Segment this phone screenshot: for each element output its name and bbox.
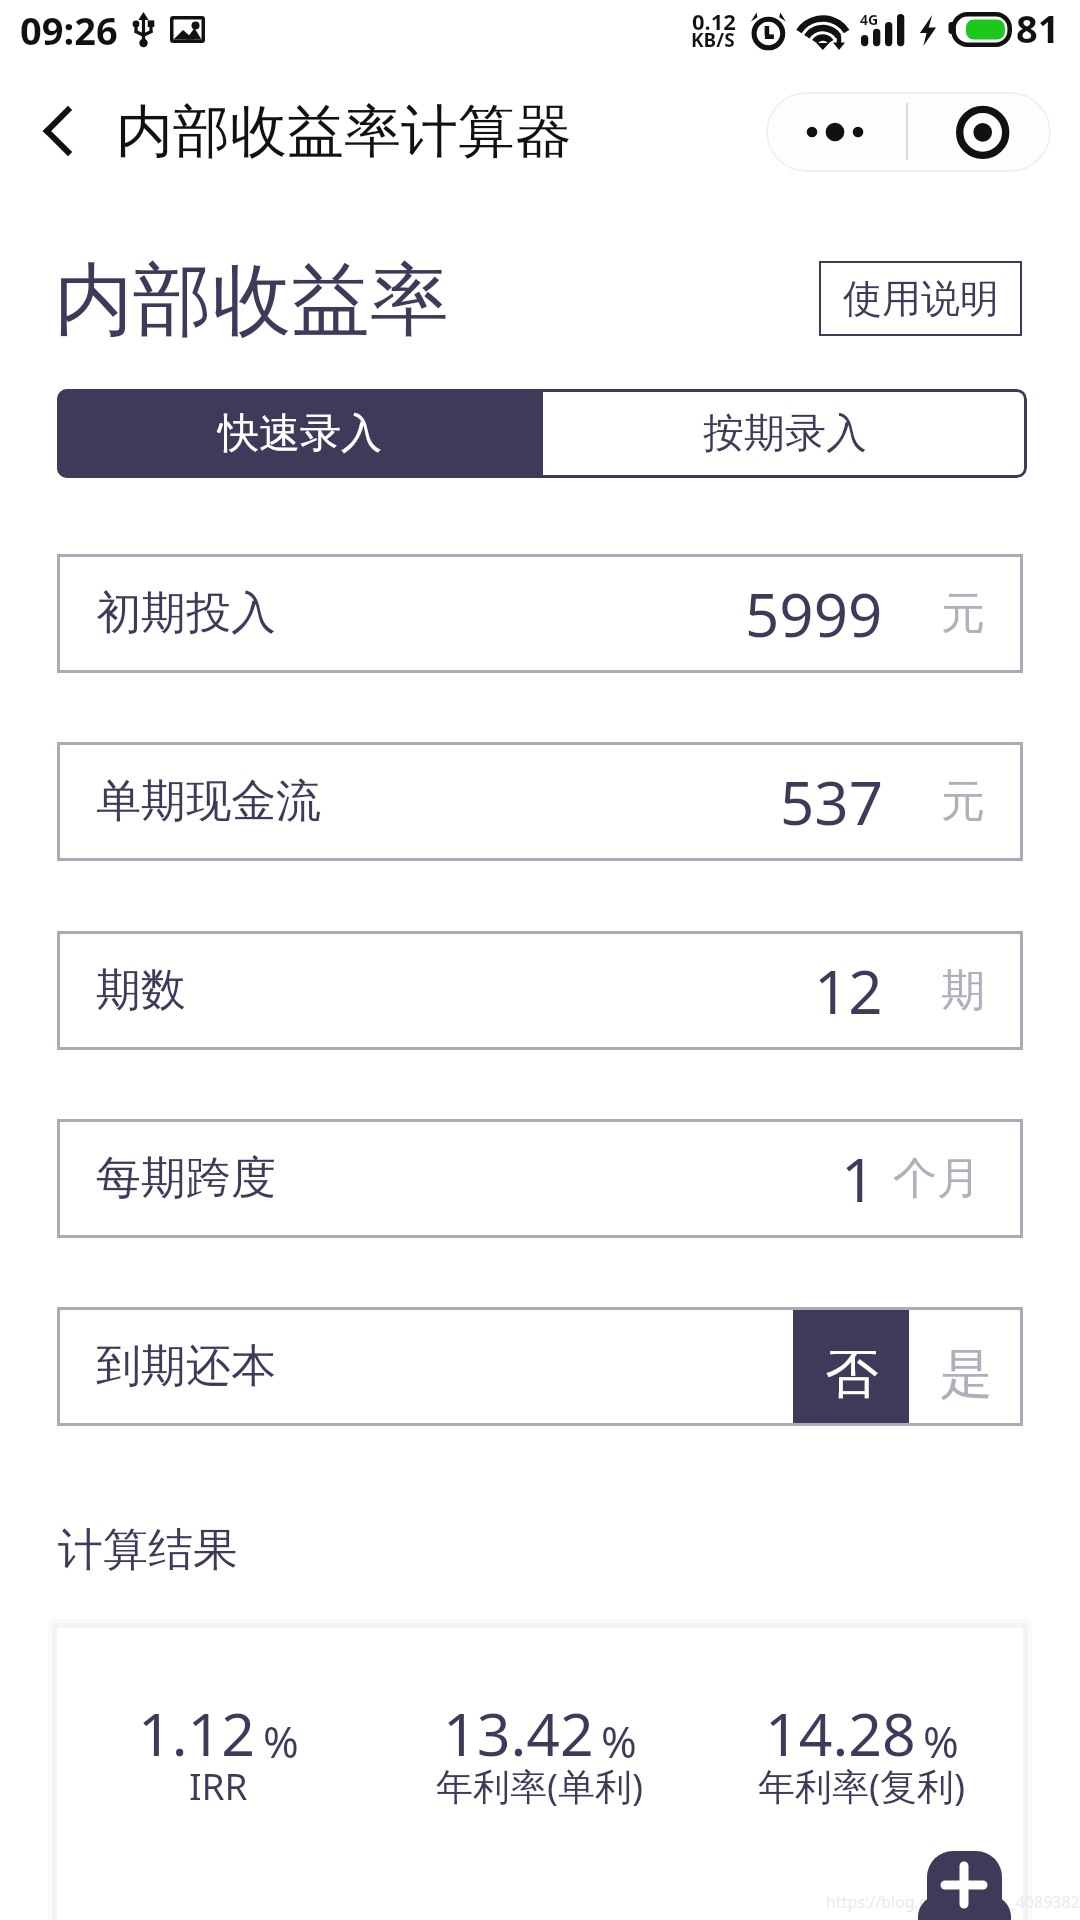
staticText: 0.12 bbox=[692, 6, 736, 36]
staticText: % bbox=[263, 1712, 299, 1771]
staticText: 计算结果 bbox=[58, 1522, 238, 1579]
staticText: 每期跨度 bbox=[96, 1150, 276, 1207]
staticText: 年利率(单利) bbox=[436, 1760, 644, 1811]
staticText: 按期录入 bbox=[703, 408, 867, 460]
staticText: % bbox=[923, 1712, 959, 1771]
button[interactable]: Back bbox=[26, 96, 96, 166]
staticText: https://blog.csdn.net/qq_40893824 bbox=[826, 1891, 1080, 1913]
button[interactable]: 快速录入 bbox=[57, 389, 543, 478]
staticText: 1 bbox=[841, 1138, 876, 1220]
button[interactable]: 每期跨度 bbox=[57, 1119, 1023, 1238]
button[interactable]: 单期现金流 bbox=[57, 742, 1023, 861]
button[interactable]: 是 bbox=[909, 1307, 1023, 1426]
staticText: 81 bbox=[1016, 2, 1060, 54]
staticText: 537 bbox=[780, 761, 883, 843]
staticText: 到期还本 bbox=[96, 1338, 276, 1395]
staticText: IRR bbox=[189, 1760, 248, 1810]
button[interactable]: 使用说明 bbox=[819, 261, 1022, 336]
staticText: KB/S bbox=[691, 27, 735, 53]
staticText: 4G bbox=[860, 10, 879, 29]
staticText: 快速录入 bbox=[218, 408, 382, 460]
button[interactable]: 初期投入 bbox=[57, 554, 1023, 673]
staticText: 元 bbox=[941, 586, 985, 641]
button[interactable]: Add bbox=[927, 1851, 1002, 1920]
staticText: 5999 bbox=[745, 573, 883, 655]
staticText: % bbox=[601, 1712, 637, 1771]
staticText: 内部收益率计算器 bbox=[116, 96, 572, 168]
staticText: 12 bbox=[814, 950, 883, 1032]
staticText: 年利率(复利) bbox=[758, 1760, 966, 1811]
staticText: 个月 bbox=[893, 1151, 981, 1206]
staticText: 使用说明 bbox=[843, 274, 999, 323]
staticText: 是 bbox=[940, 1341, 993, 1408]
staticText: 期 bbox=[941, 963, 985, 1018]
button[interactable]: More options bbox=[766, 92, 907, 172]
staticText: 内部收益率 bbox=[54, 251, 449, 351]
staticText: 14.28 bbox=[765, 1693, 916, 1773]
staticText: 期数 bbox=[96, 962, 186, 1019]
staticText: 1.12 bbox=[138, 1693, 256, 1773]
staticText: 单期现金流 bbox=[96, 773, 321, 830]
staticText: 13.42 bbox=[443, 1693, 594, 1773]
staticText: 元 bbox=[941, 774, 985, 829]
button[interactable]: 否 bbox=[793, 1307, 909, 1426]
staticText: 初期投入 bbox=[96, 585, 276, 642]
button[interactable]: 按期录入 bbox=[543, 389, 1027, 478]
staticText: 09:26 bbox=[20, 4, 118, 56]
button[interactable]: Close bbox=[926, 92, 1051, 172]
button[interactable]: 期数 bbox=[57, 931, 1023, 1050]
staticText: 否 bbox=[825, 1341, 878, 1408]
